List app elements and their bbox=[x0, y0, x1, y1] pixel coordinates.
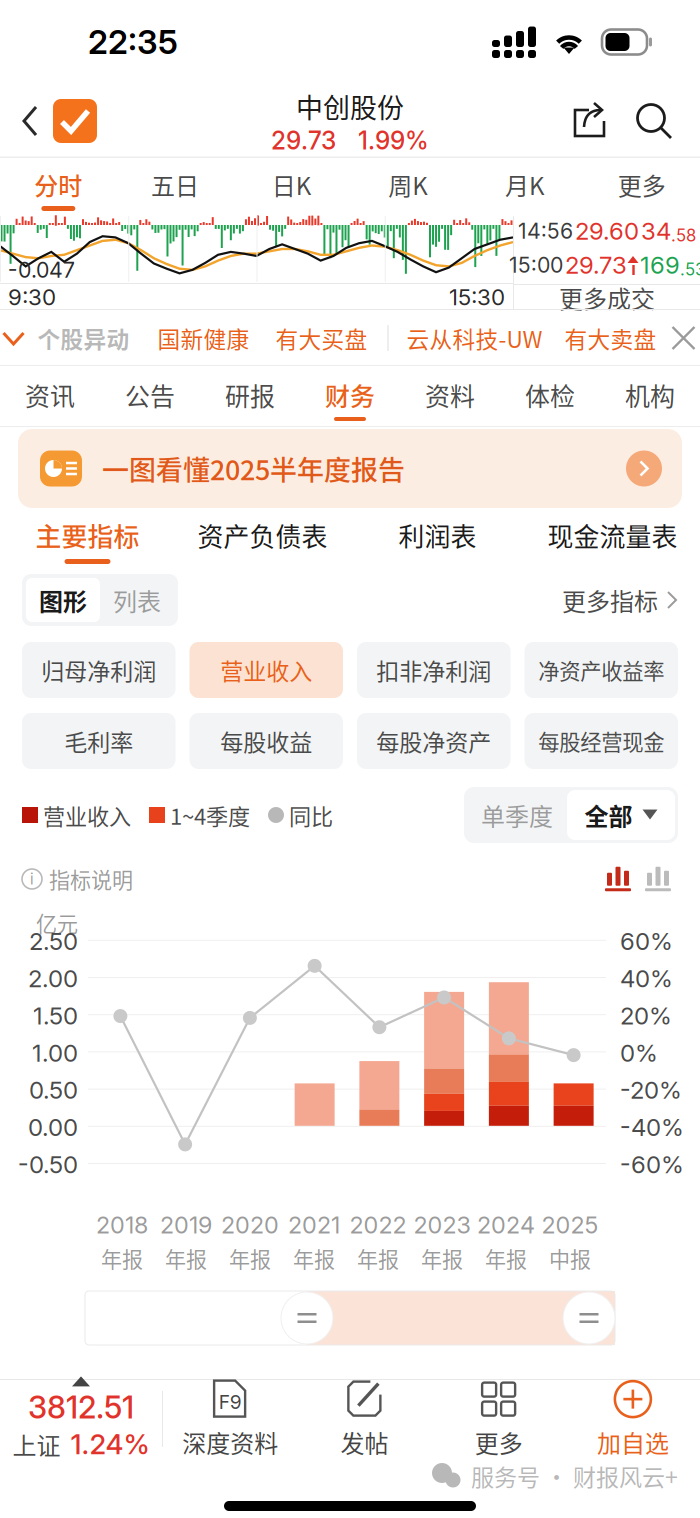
button[interactable]: 现金流量表 bbox=[525, 510, 700, 570]
staticText: 亿元 bbox=[36, 907, 78, 938]
staticText: i bbox=[30, 870, 34, 888]
button[interactable]: 发帖 bbox=[297, 1380, 431, 1458]
staticText: 资料 bbox=[425, 377, 475, 413]
staticText: 年报 bbox=[101, 1243, 143, 1274]
staticText: 29.73 bbox=[565, 250, 627, 279]
button[interactable]: 图形 bbox=[26, 578, 100, 622]
staticText: 分时 bbox=[34, 167, 82, 202]
button[interactable]: i bbox=[22, 856, 133, 902]
button[interactable]: 资产负债表 bbox=[175, 510, 350, 570]
button[interactable]: 3812.51 bbox=[0, 1380, 162, 1458]
staticText: 年报 bbox=[421, 1243, 463, 1274]
button[interactable]: 归母净利润 bbox=[22, 642, 175, 698]
staticText: 2019 bbox=[160, 1211, 212, 1239]
button[interactable]: Close bbox=[656, 310, 700, 366]
staticText: 2.50 bbox=[29, 927, 78, 956]
button[interactable]: 加自选 bbox=[566, 1380, 700, 1458]
button[interactable]: 资料 bbox=[424, 366, 476, 427]
staticText: 毛利率 bbox=[64, 724, 133, 758]
button[interactable]: 研报 bbox=[224, 366, 276, 427]
staticText: 日K bbox=[272, 167, 312, 202]
staticText: 个股异动 bbox=[37, 322, 129, 354]
button[interactable]: Stacked bar chart bbox=[598, 856, 638, 902]
staticText: 每股净资产 bbox=[376, 724, 491, 758]
button[interactable]: 分时 bbox=[0, 158, 117, 216]
button[interactable]: 营业收入 bbox=[189, 642, 343, 698]
staticText: 净资产收益率 bbox=[538, 655, 664, 685]
staticText: 现金流量表 bbox=[547, 516, 677, 554]
button[interactable]: 更多 bbox=[431, 1380, 566, 1458]
button[interactable]: 有大卖盘 bbox=[542, 310, 656, 366]
staticText: 2025 bbox=[541, 1211, 598, 1239]
staticText: 更多指标 bbox=[562, 583, 658, 617]
staticText: 一图看懂2025半年度报告 bbox=[102, 449, 405, 488]
button[interactable]: 每股收益 bbox=[189, 713, 343, 769]
staticText: .53 bbox=[680, 259, 700, 280]
button[interactable]: Back bbox=[0, 84, 107, 158]
staticText: 2023 bbox=[413, 1211, 470, 1239]
button[interactable]: 机构 bbox=[624, 366, 676, 427]
staticText: 9:30 bbox=[8, 283, 56, 310]
button[interactable]: F9 bbox=[163, 1380, 297, 1458]
button[interactable]: Search bbox=[622, 84, 686, 158]
staticText: 1.99% bbox=[358, 126, 429, 155]
button[interactable]: Bar chart bbox=[638, 856, 678, 902]
staticText: 公告 bbox=[125, 377, 175, 413]
staticText: 资产负债表 bbox=[197, 516, 327, 554]
staticText: 40% bbox=[620, 964, 673, 993]
staticText: 2021 bbox=[288, 1211, 340, 1239]
button[interactable]: 列表 bbox=[100, 578, 174, 622]
button[interactable]: 净资产收益率 bbox=[524, 642, 678, 698]
staticText: 每股经营现金 bbox=[538, 726, 664, 756]
button[interactable]: 每股净资产 bbox=[357, 713, 510, 769]
button[interactable]: 全部 bbox=[567, 790, 675, 840]
staticText: -0.50 bbox=[18, 1150, 78, 1179]
button[interactable]: 月K bbox=[467, 158, 583, 216]
staticText: 营业收入 bbox=[43, 799, 131, 831]
button[interactable]: 更多 bbox=[583, 158, 700, 216]
staticText: 更多 bbox=[618, 167, 666, 202]
staticText: 1.00 bbox=[32, 1038, 78, 1067]
staticText: 2024 bbox=[477, 1211, 535, 1239]
button[interactable]: Collapse bbox=[0, 310, 37, 366]
button[interactable]: 国新健康 bbox=[129, 310, 249, 366]
staticText: 列表 bbox=[113, 583, 161, 617]
button[interactable]: 毛利率 bbox=[22, 713, 175, 769]
button[interactable]: 有大买盘 bbox=[249, 310, 367, 366]
button[interactable]: 一图看懂2025半年度报告 bbox=[18, 429, 682, 508]
staticText: F9 bbox=[219, 1390, 242, 1414]
button[interactable]: 云从科技-UW bbox=[388, 310, 542, 366]
button[interactable]: 利润表 bbox=[350, 510, 525, 570]
staticText: 机构 bbox=[625, 377, 675, 413]
staticText: 2020 bbox=[221, 1211, 279, 1239]
staticText: 1.24% bbox=[70, 1427, 149, 1461]
staticText: 体检 bbox=[525, 377, 575, 413]
staticText: 周K bbox=[388, 167, 428, 202]
button[interactable]: 资讯 bbox=[24, 366, 76, 427]
button[interactable]: 单季度 bbox=[467, 790, 567, 840]
button[interactable]: 更多指标 bbox=[562, 574, 678, 626]
button[interactable]: 每股经营现金 bbox=[524, 713, 678, 769]
button[interactable]: 五日 bbox=[117, 158, 233, 216]
staticText: 20% bbox=[620, 1001, 672, 1030]
staticText: 34 bbox=[641, 216, 671, 245]
staticText: 2018 bbox=[96, 1211, 148, 1239]
button[interactable]: 体检 bbox=[524, 366, 576, 427]
button[interactable]: Share bbox=[558, 84, 622, 158]
staticText: 指标说明 bbox=[49, 864, 133, 894]
staticText: 中报 bbox=[549, 1243, 591, 1274]
button[interactable]: 周K bbox=[350, 158, 467, 216]
button[interactable]: 扣非净利润 bbox=[357, 642, 510, 698]
staticText: 更多成交 bbox=[559, 280, 655, 315]
staticText: -60% bbox=[620, 1150, 684, 1179]
staticText: 有大买盘 bbox=[275, 322, 367, 354]
button[interactable]: 公告 bbox=[124, 366, 176, 427]
staticText: 22:35 bbox=[88, 22, 178, 62]
staticText: 1.50 bbox=[33, 1001, 78, 1030]
staticText: 扣非净利润 bbox=[376, 653, 491, 687]
button[interactable]: 主要指标 bbox=[0, 510, 175, 570]
button[interactable]: 财务 bbox=[324, 366, 376, 427]
button[interactable]: 日K bbox=[233, 158, 350, 216]
staticText: 资讯 bbox=[25, 377, 75, 413]
button[interactable]: 更多成交 bbox=[514, 285, 700, 310]
